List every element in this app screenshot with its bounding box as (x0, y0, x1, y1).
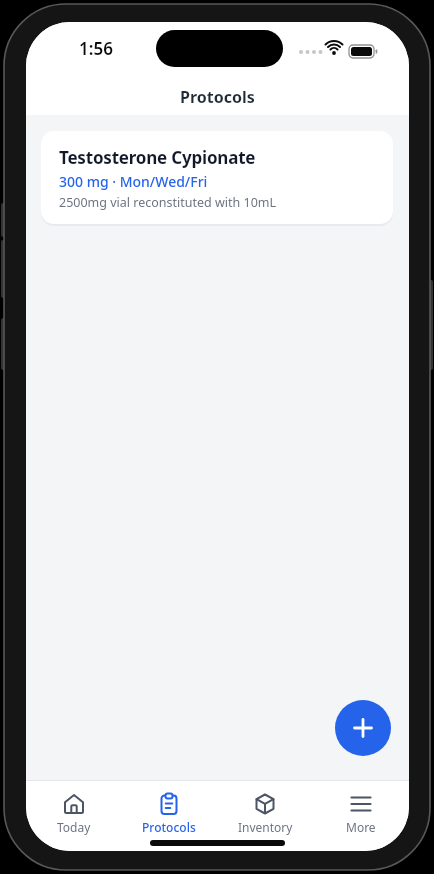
staticText: Today (57, 819, 91, 835)
button[interactable]: Protocols (121, 781, 217, 851)
staticText: Protocols (142, 819, 196, 835)
staticText: 2500mg vial reconstituted with 10mL (59, 194, 277, 211)
staticText: Protocols (180, 86, 255, 108)
button[interactable]: Today (26, 781, 121, 851)
button[interactable] (335, 700, 391, 756)
staticText: 1:56 (79, 37, 113, 60)
staticText: Testosterone Cypionate (59, 146, 256, 169)
button[interactable]: Inventory (217, 781, 313, 851)
button[interactable]: Testosterone Cypionate (41, 131, 393, 224)
staticText: 300 mg · Mon/Wed/Fri (59, 172, 208, 191)
staticText: Inventory (238, 819, 293, 835)
staticText: More (346, 819, 376, 835)
button[interactable]: More (313, 781, 409, 851)
